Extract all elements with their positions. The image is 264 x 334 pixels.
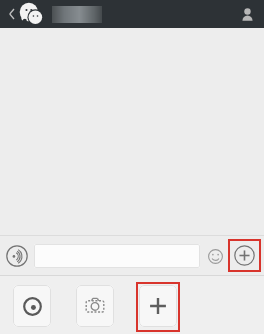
- button[interactable]: Voice input: [4, 243, 30, 269]
- button[interactable]: Contact info: [235, 2, 259, 26]
- button[interactable]: More functions: [228, 239, 261, 272]
- button[interactable]: [34, 244, 200, 268]
- button[interactable]: Add more: [139, 285, 177, 327]
- button[interactable]: Camera: [76, 285, 114, 327]
- button[interactable]: [52, 6, 102, 23]
- button[interactable]: Album: [13, 285, 51, 327]
- button[interactable]: Back: [5, 2, 19, 26]
- button[interactable]: Emoji: [203, 244, 227, 268]
